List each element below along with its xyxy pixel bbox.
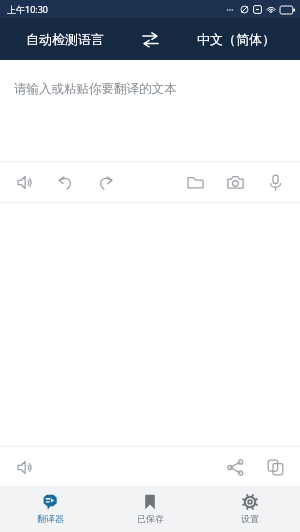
staticText: 已保存	[137, 513, 164, 524]
staticText: 自动检测语言	[26, 31, 104, 47]
button[interactable]: Microphone	[262, 169, 288, 195]
button[interactable]: Listen	[12, 169, 38, 195]
button[interactable]: 请输入或粘贴你要翻译的文本	[0, 60, 300, 161]
button[interactable]: 翻译器	[0, 486, 100, 532]
button[interactable]: Listen to translation	[12, 454, 38, 480]
button[interactable]: Copy	[262, 454, 288, 480]
staticText: 请输入或粘贴你要翻译的文本	[14, 81, 177, 97]
button[interactable]: 自动检测语言	[0, 18, 129, 60]
staticText: 上午10:30	[7, 3, 49, 15]
button[interactable]: Swap languages	[129, 18, 171, 60]
staticText: 设置	[241, 513, 259, 524]
button[interactable]: 已保存	[100, 486, 200, 532]
button[interactable]: 中文（简体）	[171, 18, 300, 60]
button[interactable]: Share	[222, 454, 248, 480]
button[interactable]: Camera	[222, 169, 248, 195]
staticText: 中文（简体）	[197, 31, 275, 47]
button[interactable]: Documents	[182, 169, 208, 195]
button[interactable]: Undo	[52, 169, 78, 195]
button[interactable]: Redo	[92, 169, 118, 195]
staticText: 翻译器	[37, 513, 64, 524]
button[interactable]: 设置	[200, 486, 300, 532]
